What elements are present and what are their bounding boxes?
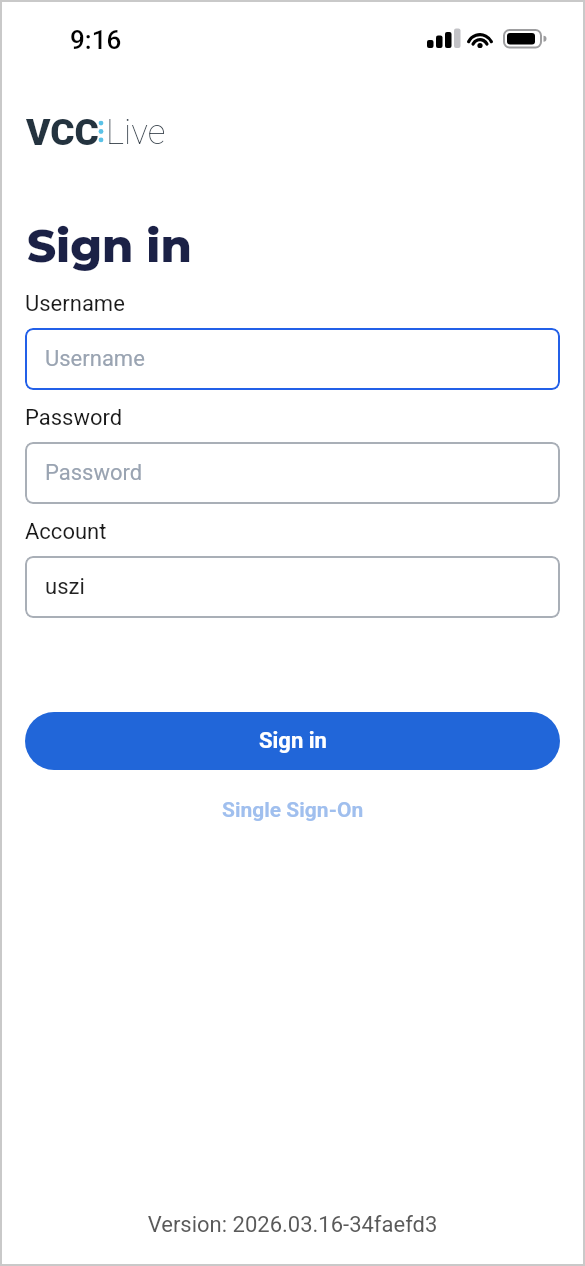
staticText: Live [106,112,166,153]
staticText: Username [25,291,125,317]
staticText: VCC [26,111,99,154]
staticText: Password [25,405,123,431]
staticText: Account [25,519,107,545]
staticText: Sign in [259,728,327,754]
staticText: 9:16 [70,25,122,55]
staticText: Single Sign-On [222,798,364,823]
button[interactable]: Password [25,442,560,504]
button[interactable]: Single Sign-On [0,790,585,830]
staticText: Username [45,346,145,372]
button[interactable]: uszi [25,556,560,618]
button[interactable]: Sign in [25,712,560,770]
staticText: uszi [45,574,85,600]
button[interactable]: Username [25,328,560,390]
staticText: Version: 2026.03.16-34faefd3 [0,1212,585,1238]
staticText: Password [45,460,143,486]
staticText: Sign in [27,218,192,273]
